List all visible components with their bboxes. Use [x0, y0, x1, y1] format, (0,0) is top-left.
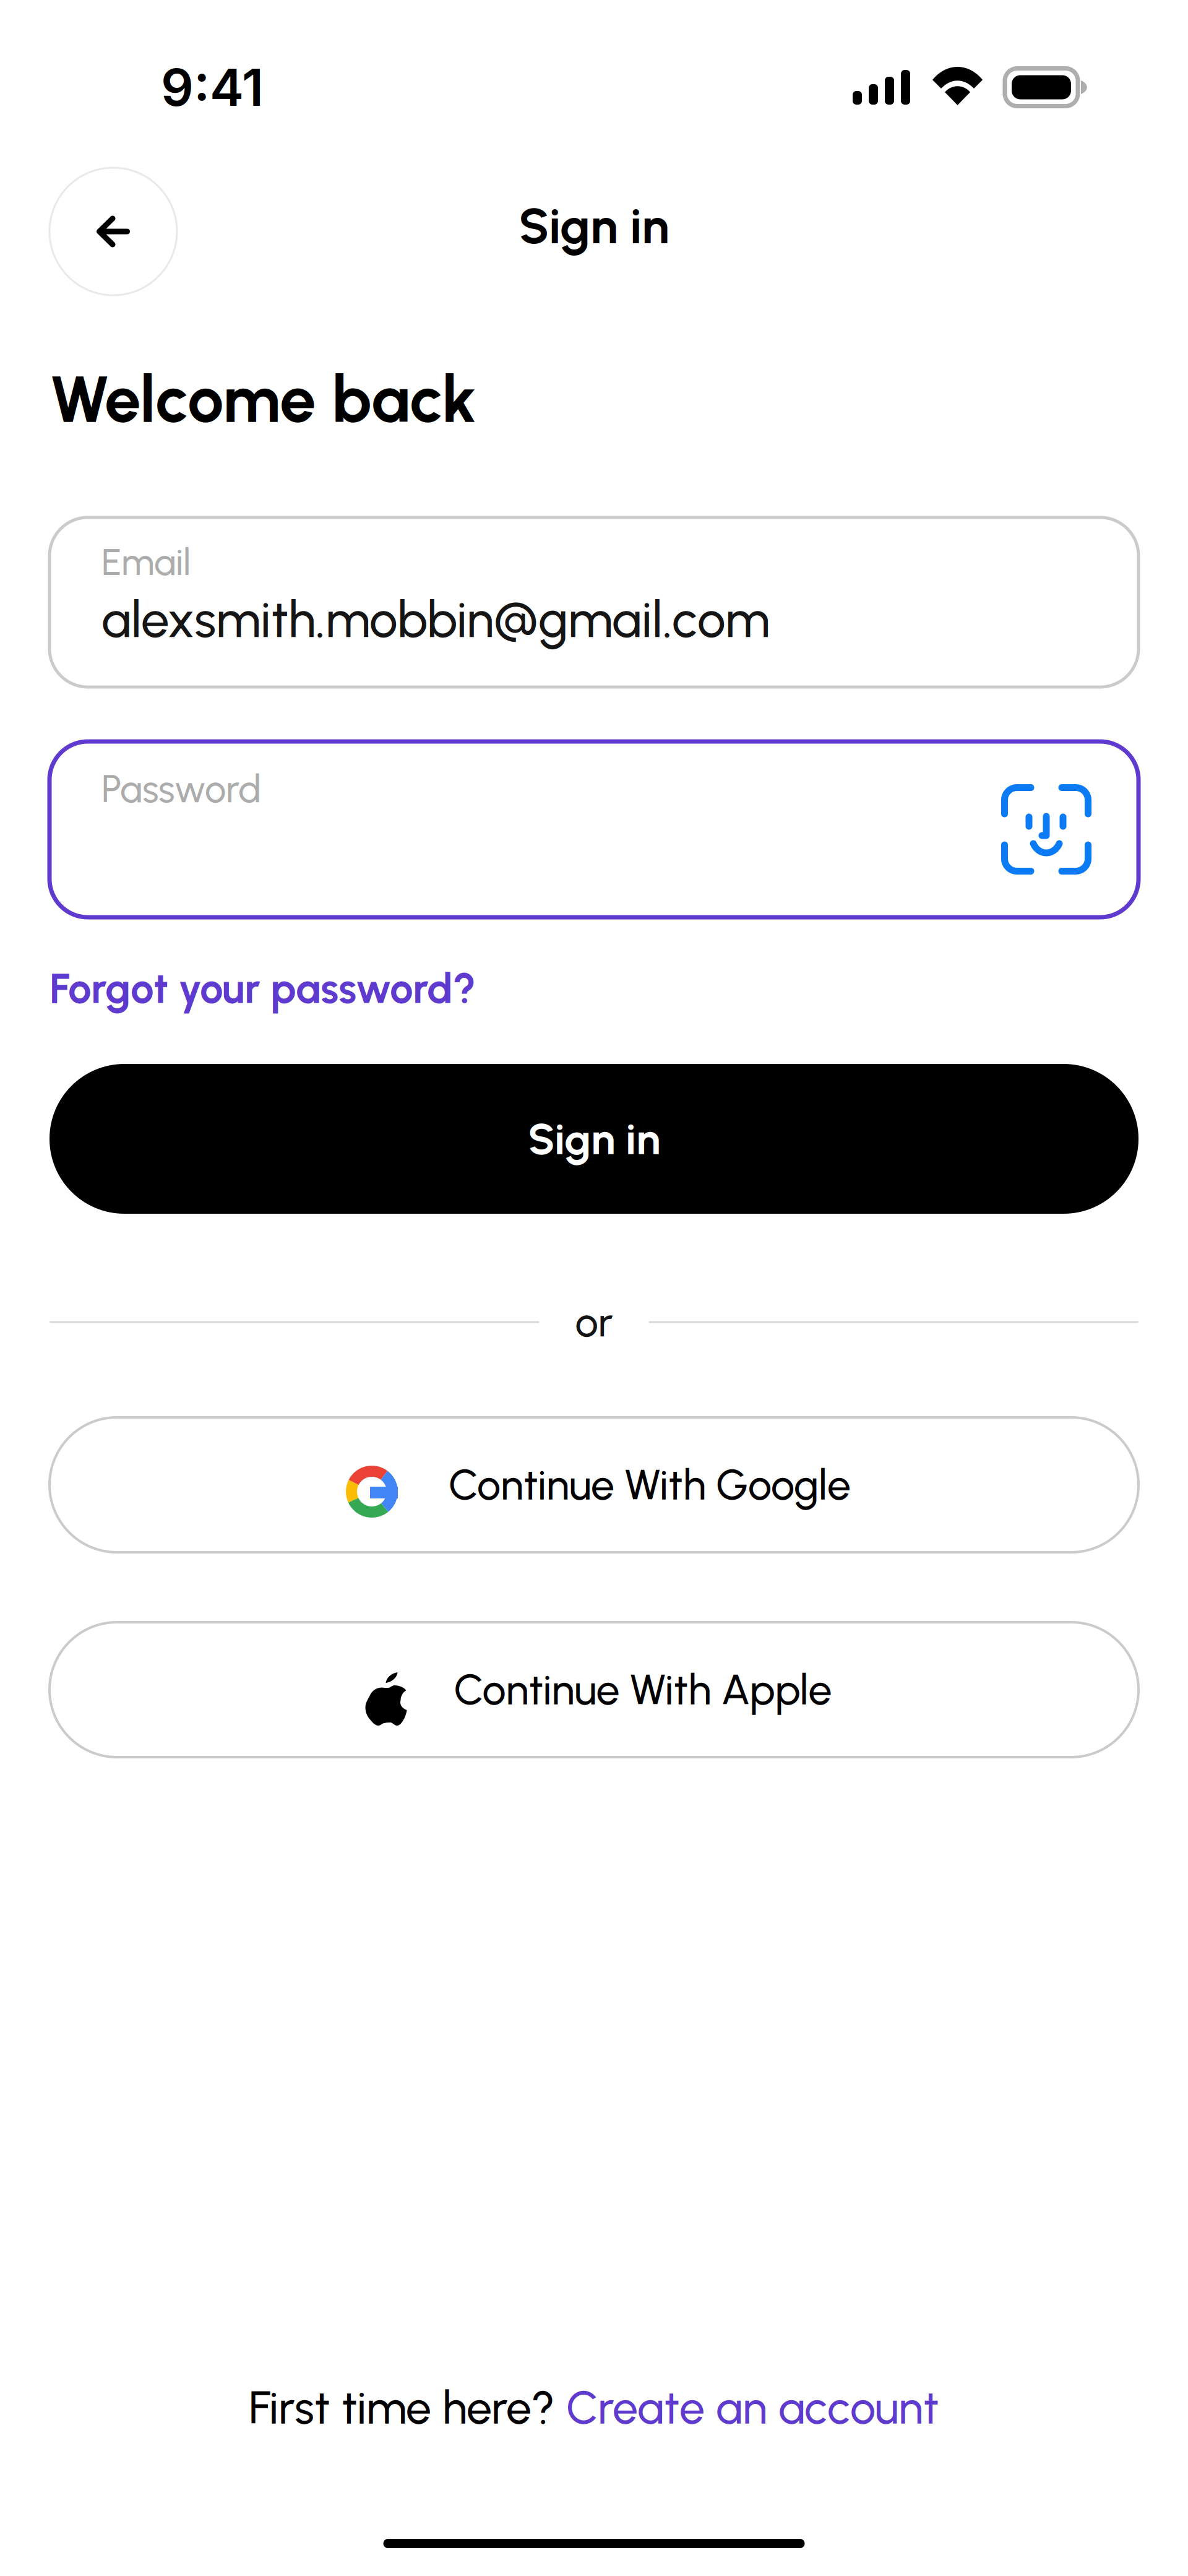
staticText: Sign in: [528, 1113, 660, 1165]
staticText: Continue With Apple: [454, 1664, 832, 1715]
staticText: Forgot your password?: [49, 963, 476, 1013]
button[interactable]: Sign in: [49, 1064, 1138, 1214]
button[interactable]: Back: [49, 168, 177, 295]
staticText: Create an account: [566, 2380, 939, 2435]
button[interactable]: Continue With Google: [49, 1417, 1138, 1552]
staticText: or: [575, 1297, 613, 1347]
staticText: Welcome back: [49, 360, 476, 438]
button[interactable]: Sign in with Face ID: [1001, 784, 1091, 875]
button[interactable]: First time here?: [236, 2371, 952, 2445]
staticText: Password: [101, 766, 261, 812]
staticText: Sign in: [519, 196, 669, 256]
button[interactable]: Continue With Apple: [49, 1622, 1138, 1757]
staticText: alexsmith.mobbin@gmail.com: [101, 589, 770, 650]
staticText: Continue With Google: [449, 1460, 851, 1510]
staticText: First time here?: [249, 2380, 566, 2435]
button[interactable]: Forgot your password?: [49, 963, 476, 1013]
staticText: Email: [101, 540, 191, 584]
staticText: 9:41: [161, 56, 264, 118]
